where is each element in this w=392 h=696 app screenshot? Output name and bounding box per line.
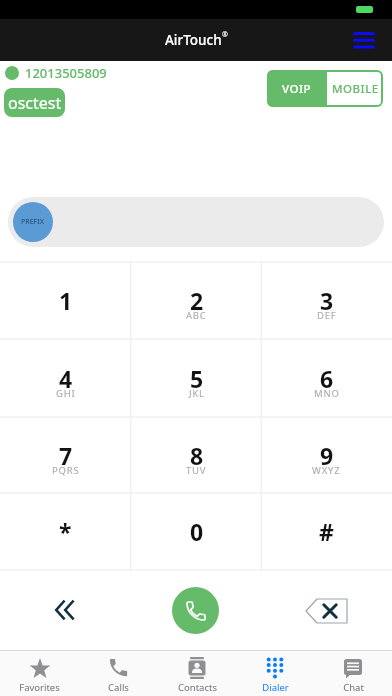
staticText: PREFIX [21, 217, 45, 227]
button[interactable] [350, 26, 378, 54]
staticText: GHI [56, 387, 76, 400]
staticText: 6 [320, 363, 334, 394]
button[interactable]: 5 [131, 339, 262, 417]
staticText: 5 [190, 363, 204, 394]
staticText: # [319, 516, 334, 547]
staticText: 9 [320, 440, 334, 471]
button[interactable]: 8 [131, 417, 262, 493]
button[interactable]: 2 [131, 262, 262, 339]
button[interactable]: PREFIX [13, 202, 53, 242]
staticText: 4 [59, 363, 73, 394]
button[interactable]: VOIP [267, 70, 327, 107]
button[interactable]: Contacts [158, 650, 236, 696]
staticText: Chat [343, 681, 364, 694]
button[interactable]: 4 [0, 339, 131, 417]
staticText: AirTouch [165, 31, 222, 49]
button[interactable]: osctest [4, 88, 65, 117]
button[interactable]: 9 [261, 417, 392, 493]
button[interactable] [172, 587, 219, 634]
button[interactable]: * [0, 493, 131, 570]
staticText: Dialer [262, 681, 289, 694]
button[interactable]: Dialer [236, 650, 314, 696]
button[interactable]: 0 [131, 493, 262, 570]
staticText: VOIP [282, 81, 312, 97]
staticText: 8 [190, 440, 204, 471]
button[interactable]: MOBILE [327, 70, 383, 107]
staticText: 0 [190, 516, 204, 547]
button[interactable]: Calls [79, 650, 158, 696]
button[interactable]: 6 [261, 339, 392, 417]
button[interactable] [40, 586, 88, 634]
staticText: ® [222, 30, 228, 40]
button[interactable]: # [261, 493, 392, 570]
staticText: Contacts [178, 681, 217, 694]
staticText: TUV [186, 464, 207, 477]
staticText: JKL [189, 387, 205, 400]
staticText: 1 [59, 285, 73, 316]
staticText: osctest [8, 92, 62, 114]
staticText: 12013505809 [25, 64, 107, 82]
button[interactable]: 1 [0, 262, 131, 339]
staticText: Calls [108, 681, 129, 694]
staticText: DEF [317, 309, 337, 322]
button[interactable]: Favorites [0, 650, 79, 696]
staticText: MOBILE [332, 81, 379, 97]
button[interactable]: 7 [0, 417, 131, 493]
staticText: MNO [314, 387, 340, 400]
staticText: 2 [190, 285, 204, 316]
staticText: Favorites [19, 681, 60, 694]
button[interactable]: 3 [261, 262, 392, 339]
staticText: 7 [59, 440, 73, 471]
staticText: ABC [186, 309, 207, 322]
button[interactable] [298, 588, 354, 632]
staticText: 3 [320, 285, 334, 316]
button[interactable]: Chat [314, 650, 392, 696]
staticText: PQRS [52, 464, 80, 477]
staticText: WXYZ [312, 464, 341, 477]
staticText: * [59, 516, 72, 547]
